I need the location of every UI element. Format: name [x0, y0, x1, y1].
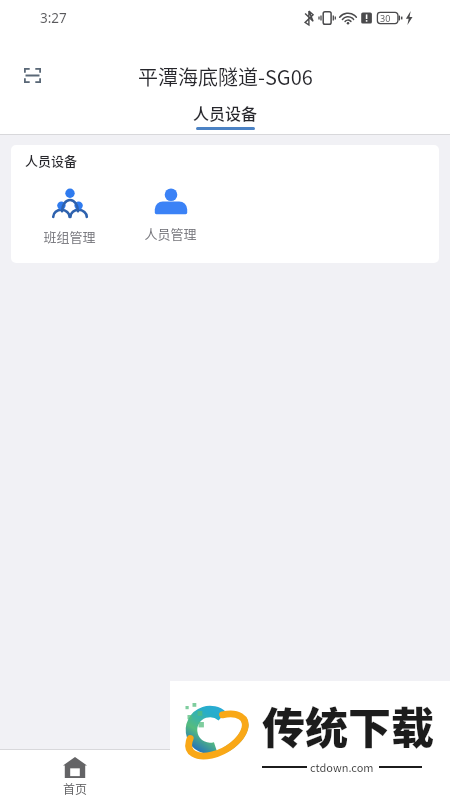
staticText: 30 [380, 12, 391, 24]
button[interactable]: 班组管理 [19, 186, 120, 246]
button[interactable]: Scan QR code [16, 59, 48, 91]
staticText: 人员设备 [25, 151, 78, 170]
button[interactable]: 人员管理 [120, 186, 221, 243]
staticText: 首页 [63, 780, 88, 797]
button[interactable]: 首页 [45, 750, 105, 797]
staticText: 人员管理 [144, 224, 197, 243]
staticText: ctdown.com [310, 759, 374, 775]
staticText: 人员设备 [193, 101, 258, 124]
staticText: 传统下载 [262, 694, 434, 756]
staticText: 班组管理 [43, 227, 96, 246]
staticText: 3:27 [40, 9, 67, 27]
staticText: 平潭海底隧道-SG06 [138, 62, 313, 91]
button[interactable]: 人员设备 [193, 101, 258, 130]
